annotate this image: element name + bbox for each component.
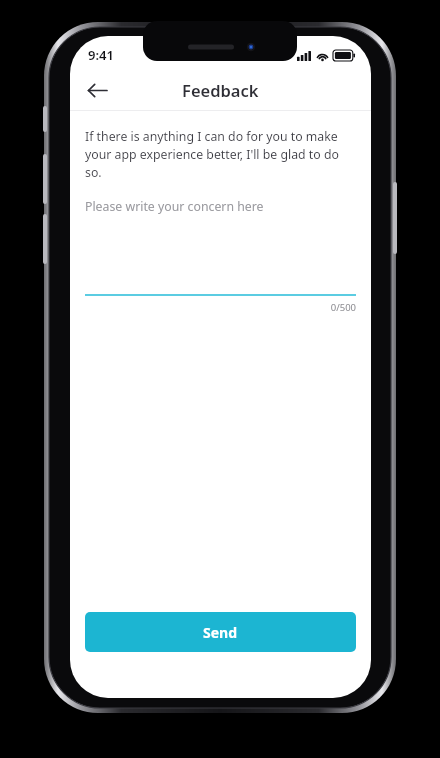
staticText: Send xyxy=(203,623,238,642)
button[interactable]: Please write your concern here xyxy=(85,198,356,294)
staticText: Please write your concern here xyxy=(85,198,264,215)
staticText: 9:41 xyxy=(88,46,114,64)
staticText: Feedback xyxy=(182,79,259,101)
button[interactable]: Back xyxy=(79,72,115,108)
button[interactable]: Send xyxy=(85,612,356,652)
staticText: 0/500 xyxy=(85,301,356,314)
staticText: If there is anything I can do for you to… xyxy=(85,128,356,181)
